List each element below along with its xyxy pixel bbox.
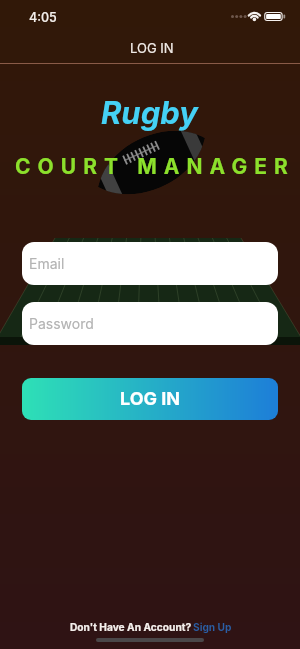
staticText: Sign Up — [193, 621, 232, 633]
staticText: LOG IN — [130, 40, 174, 56]
button[interactable]: Sign Up — [193, 621, 232, 633]
staticText: Email — [29, 255, 65, 272]
staticText: Password — [29, 315, 94, 332]
staticText: LOG IN — [120, 388, 181, 410]
staticText: Don't Have An Account? — [70, 621, 193, 633]
staticText: Rugby — [101, 94, 198, 132]
button[interactable]: LOG IN — [22, 378, 278, 420]
staticText: COURT MANAGER — [15, 154, 295, 179]
button[interactable]: Password — [22, 302, 278, 345]
button[interactable]: Email — [22, 242, 278, 285]
staticText: 4:05 — [29, 10, 57, 25]
